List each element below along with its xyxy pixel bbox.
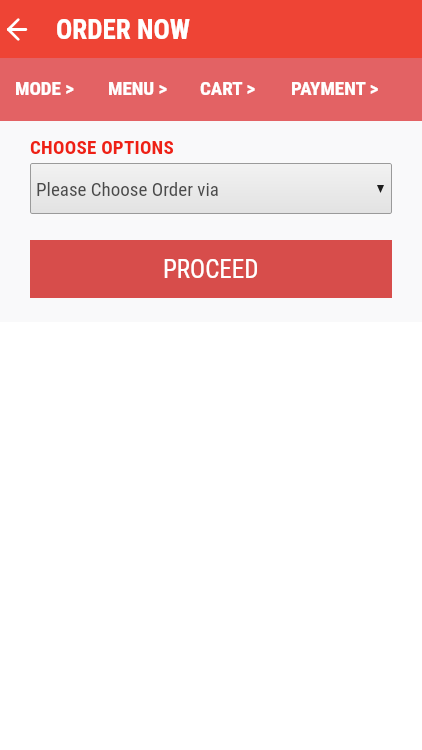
staticText: CART > [200, 77, 256, 99]
staticText: PROCEED [163, 255, 259, 284]
button[interactable]: PROCEED [30, 240, 392, 298]
staticText: Please Choose Order via [36, 178, 219, 200]
staticText: ORDER NOW [56, 14, 190, 46]
staticText: CHOOSE OPTIONS [30, 136, 174, 158]
button[interactable]: PAYMENT > [291, 77, 379, 99]
button[interactable]: MODE > [15, 77, 74, 99]
staticText: MENU > [108, 77, 168, 99]
button[interactable]: Back [0, 0, 44, 58]
button[interactable]: Please Choose Order via [30, 163, 392, 214]
staticText: PAYMENT > [291, 77, 379, 99]
button[interactable]: MENU > [108, 77, 168, 99]
button[interactable]: CART > [200, 77, 256, 99]
staticText: MODE > [15, 77, 74, 99]
